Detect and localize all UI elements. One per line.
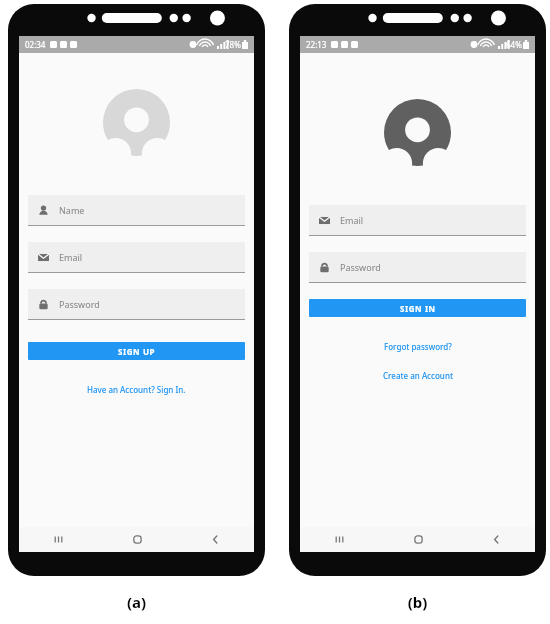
button[interactable]: Home	[98, 527, 176, 552]
staticText: Email	[59, 251, 83, 263]
button[interactable]: Password	[28, 289, 245, 320]
button[interactable]: Home	[379, 527, 457, 552]
button[interactable]: Password	[309, 252, 526, 283]
staticText: SIGN IN	[400, 303, 436, 314]
staticText: Password	[340, 261, 381, 273]
button[interactable]: Recent apps	[300, 527, 379, 552]
button[interactable]: SIGN IN	[309, 299, 526, 317]
staticText: Password	[59, 298, 100, 310]
staticText: Have an Account? Sign In.	[87, 384, 186, 395]
staticText: SIGN UP	[118, 346, 156, 357]
staticText: 64%	[506, 39, 522, 50]
button[interactable]: Name	[28, 195, 245, 226]
button[interactable]: Recent apps	[19, 527, 98, 552]
button[interactable]: SIGN UP	[28, 342, 245, 360]
button[interactable]: Email	[309, 205, 526, 236]
button[interactable]: Back	[457, 527, 535, 552]
staticText: Create an Account	[383, 370, 453, 381]
staticText: Email	[340, 214, 364, 226]
button[interactable]: Forgot password?	[309, 341, 526, 352]
button[interactable]: Email	[28, 242, 245, 273]
staticText: Name	[59, 204, 85, 216]
button[interactable]: Have an Account? Sign In.	[28, 384, 245, 395]
button[interactable]: Back	[176, 527, 254, 552]
staticText: 78%	[225, 39, 241, 50]
staticText: (a)	[8, 592, 265, 612]
staticText: (b)	[289, 592, 546, 612]
staticText: Forgot password?	[384, 341, 452, 352]
staticText: 22:13	[306, 39, 327, 50]
staticText: 02:34	[25, 39, 46, 50]
button[interactable]: Create an Account	[309, 370, 526, 381]
